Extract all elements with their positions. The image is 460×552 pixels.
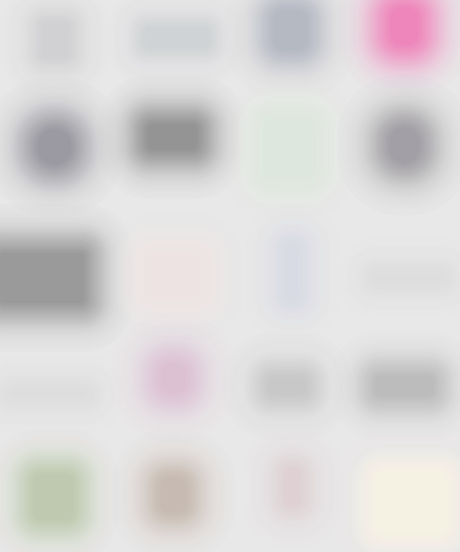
button[interactable]: Item 10 xyxy=(115,210,230,322)
button[interactable]: Item 12 xyxy=(345,210,460,322)
button[interactable]: Item 4 xyxy=(345,0,460,92)
button[interactable]: Item 15 xyxy=(230,322,345,434)
button[interactable]: Item 11 xyxy=(230,210,345,322)
button[interactable]: Item 6 xyxy=(115,92,230,210)
button[interactable]: Item 16 xyxy=(345,322,460,434)
button[interactable]: Item 8 xyxy=(345,92,460,210)
button[interactable]: Item 18 xyxy=(115,434,230,552)
button[interactable]: Item 2 xyxy=(115,0,230,92)
button[interactable]: Item 20 xyxy=(345,434,460,552)
button[interactable]: Item 17 xyxy=(0,434,115,552)
button[interactable]: Item 9 xyxy=(0,210,115,322)
button[interactable]: Item 1 xyxy=(0,0,115,92)
button[interactable]: Item 19 xyxy=(230,434,345,552)
button[interactable]: Item 14 xyxy=(115,322,230,434)
button[interactable]: Item 5 xyxy=(0,92,115,210)
button[interactable]: Item 7 xyxy=(230,92,345,210)
button[interactable]: Item 13 xyxy=(0,322,115,434)
button[interactable]: Item 3 xyxy=(230,0,345,92)
